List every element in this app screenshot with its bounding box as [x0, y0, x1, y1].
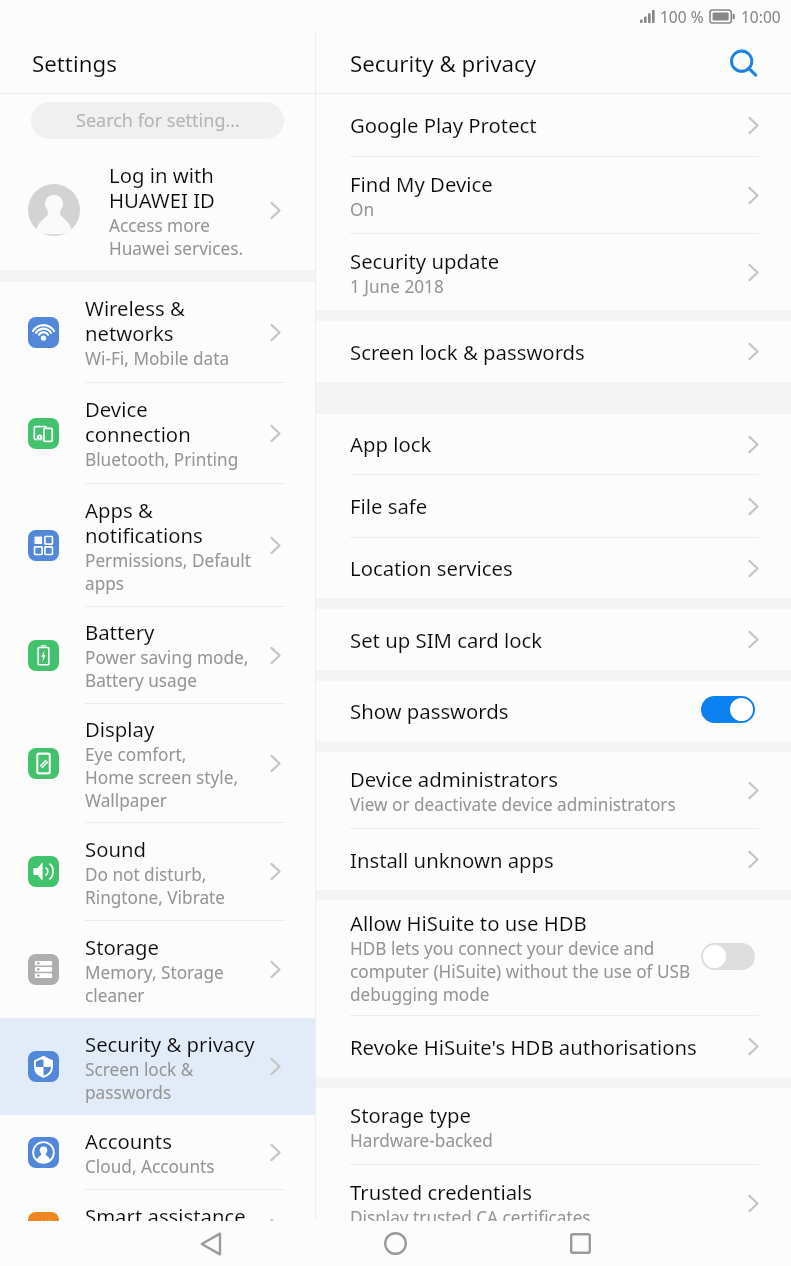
- staticText: Battery: [85, 618, 155, 646]
- staticText: Accounts: [85, 1127, 172, 1155]
- staticText: HDB lets you connect your device and com…: [350, 937, 691, 1006]
- button[interactable]: Install unknown apps: [316, 829, 791, 890]
- button[interactable]: Device administrators: [316, 752, 791, 828]
- staticText: 100 %: [660, 6, 704, 27]
- button[interactable]: Wireless & networks: [0, 282, 315, 382]
- staticText: Bluetooth, Printing: [85, 448, 239, 471]
- staticText: Power saving mode, Battery usage: [85, 646, 249, 692]
- staticText: Device administrators: [350, 765, 558, 793]
- button[interactable]: App lock: [316, 414, 791, 474]
- staticText: 10:00: [741, 6, 781, 27]
- button[interactable]: Back: [118, 1221, 303, 1266]
- button[interactable]: Search: [713, 32, 775, 93]
- staticText: Location services: [350, 554, 513, 582]
- staticText: Install unknown apps: [350, 846, 554, 874]
- staticText: Apps & notifications: [85, 496, 203, 549]
- staticText: Show passwords: [350, 697, 509, 725]
- button[interactable]: Screen lock & passwords: [316, 321, 791, 382]
- staticText: Screen lock & passwords: [350, 338, 585, 366]
- staticText: Display: [85, 715, 155, 743]
- button[interactable]: Smart assistance: [0, 1190, 315, 1221]
- staticText: Eye comfort, Home screen style, Wallpape…: [85, 743, 239, 812]
- staticText: Permissions, Default apps: [85, 549, 251, 595]
- staticText: Storage type: [350, 1101, 471, 1129]
- button[interactable]: File safe: [316, 475, 791, 537]
- staticText: App lock: [350, 430, 432, 458]
- button[interactable]: Recents: [488, 1221, 673, 1266]
- staticText: Set up SIM card lock: [350, 626, 543, 654]
- button[interactable]: Log in with HUAWEI ID: [0, 139, 315, 270]
- button[interactable]: Sound: [0, 823, 315, 920]
- staticText: Allow HiSuite to use HDB: [350, 909, 587, 937]
- button[interactable]: Battery: [0, 607, 315, 703]
- button[interactable]: Apps & notifications: [0, 484, 315, 606]
- button[interactable]: Storage type: [316, 1088, 791, 1164]
- button[interactable]: Show passwords: [316, 681, 791, 741]
- staticText: Memory, Storage cleaner: [85, 961, 224, 1007]
- staticText: View or deactivate device administrators: [350, 793, 676, 816]
- staticText: Display trusted CA certificates: [350, 1206, 591, 1221]
- button[interactable]: Display: [0, 704, 315, 822]
- button[interactable]: Find My Device: [316, 157, 791, 233]
- button[interactable]: Security update: [316, 234, 791, 310]
- staticText: Screen lock & passwords: [85, 1058, 194, 1104]
- button[interactable]: Storage: [0, 921, 315, 1018]
- staticText: Security & privacy: [350, 48, 713, 78]
- staticText: Settings: [32, 48, 117, 78]
- button[interactable]: Search for setting...: [31, 102, 284, 139]
- staticText: 1 June 2018: [350, 275, 444, 298]
- staticText: File safe: [350, 492, 428, 520]
- staticText: On: [350, 198, 375, 221]
- staticText: Wi-Fi, Mobile data: [85, 347, 230, 370]
- button[interactable]: Google Play Protect: [316, 94, 791, 156]
- staticText: Device connection: [85, 395, 191, 448]
- button[interactable]: Toggle: [701, 696, 755, 723]
- staticText: Find My Device: [350, 170, 493, 198]
- staticText: Google Play Protect: [350, 111, 537, 139]
- button[interactable]: Revoke HiSuite's HDB authorisations: [316, 1016, 791, 1077]
- button[interactable]: Trusted credentials: [316, 1165, 791, 1221]
- staticText: Storage: [85, 933, 160, 961]
- staticText: Log in with HUAWEI ID: [109, 161, 215, 214]
- staticText: Trusted credentials: [350, 1178, 533, 1206]
- staticText: Access more Huawei services.: [109, 214, 244, 260]
- button[interactable]: Allow HiSuite to use HDB: [316, 900, 791, 1015]
- staticText: Security update: [350, 247, 500, 275]
- staticText: Cloud, Accounts: [85, 1155, 215, 1178]
- button[interactable]: Location services: [316, 538, 791, 598]
- button[interactable]: Toggle: [701, 943, 755, 970]
- staticText: Revoke HiSuite's HDB authorisations: [350, 1033, 697, 1061]
- button[interactable]: Home: [303, 1221, 488, 1266]
- staticText: Security & privacy: [85, 1030, 255, 1058]
- staticText: Sound: [85, 835, 146, 863]
- button[interactable]: Security & privacy: [0, 1018, 315, 1115]
- button[interactable]: Device connection: [0, 383, 315, 483]
- button[interactable]: Accounts: [0, 1115, 315, 1189]
- button[interactable]: Set up SIM card lock: [316, 609, 791, 670]
- staticText: Do not disturb, Ringtone, Vibrate: [85, 863, 225, 909]
- staticText: Smart assistance: [85, 1202, 246, 1221]
- staticText: Wireless & networks: [85, 294, 185, 347]
- staticText: Hardware-backed: [350, 1129, 493, 1152]
- staticText: Search for setting...: [76, 108, 240, 133]
